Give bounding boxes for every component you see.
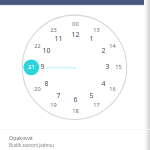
staticText: 13 — [93, 26, 100, 34]
staticText: 18 — [72, 107, 79, 115]
button[interactable]: 5 — [82, 90, 100, 102]
button[interactable]: 4 — [94, 78, 112, 90]
button[interactable]: 17 — [87, 99, 105, 111]
staticText: 8 — [44, 79, 49, 89]
staticText: 23 — [50, 26, 57, 34]
staticText: 14 — [109, 42, 116, 50]
staticText: 21 — [28, 63, 35, 71]
button[interactable]: 3 — [98, 61, 116, 73]
staticText: 12 — [71, 30, 80, 40]
staticText: 22 — [34, 42, 41, 50]
staticText: 10 — [42, 46, 51, 56]
button[interactable]: 15 — [109, 61, 127, 73]
button[interactable]: 14 — [103, 40, 121, 52]
staticText: 9 — [40, 62, 45, 72]
button[interactable]: 8 — [37, 78, 55, 90]
button[interactable]: 21 — [22, 61, 40, 73]
staticText: Opakovat — [9, 134, 33, 141]
staticText: 16 — [109, 85, 116, 93]
button[interactable]: 11 — [49, 33, 67, 45]
staticText: 19 — [50, 101, 57, 109]
button[interactable]: Opakovat — [0, 134, 150, 150]
staticText: 15 — [115, 63, 122, 71]
staticText: 2 — [101, 46, 106, 56]
button[interactable]: 12 — [66, 29, 84, 41]
button[interactable]: 23 — [44, 24, 62, 36]
button[interactable]: 00 — [66, 18, 84, 30]
staticText: 20 — [34, 85, 41, 93]
button[interactable]: 13 — [87, 24, 105, 36]
button[interactable]: 19 — [44, 99, 62, 111]
other: Clock face time picker — [0, 0, 150, 150]
button[interactable]: 16 — [103, 83, 121, 95]
staticText: 3 — [105, 62, 110, 72]
staticText: 7 — [56, 91, 61, 101]
button[interactable]: 1 — [82, 33, 100, 45]
staticText: 1 — [89, 34, 94, 44]
staticText: 6 — [73, 95, 78, 105]
staticText: 4 — [101, 79, 106, 89]
button[interactable]: 6 — [66, 94, 84, 106]
staticText: 00 — [72, 20, 79, 28]
staticText: 11 — [54, 34, 63, 44]
staticText: Budík zazvoní jednou — [9, 142, 54, 148]
button[interactable]: 2 — [94, 45, 112, 57]
button[interactable]: 9 — [33, 61, 51, 73]
staticText: 17 — [93, 101, 100, 109]
staticText: 5 — [89, 91, 94, 101]
button[interactable]: 7 — [49, 90, 67, 102]
button[interactable]: 18 — [66, 105, 84, 117]
button[interactable]: 22 — [28, 40, 46, 52]
button[interactable]: 10 — [37, 45, 55, 57]
button[interactable]: 20 — [28, 83, 46, 95]
